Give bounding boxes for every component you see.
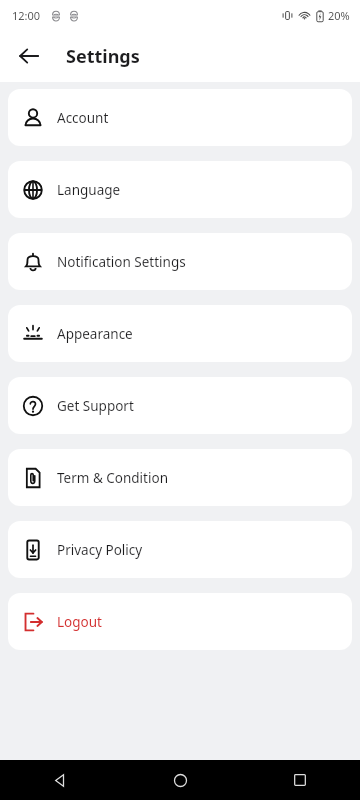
staticText: 20% (328, 8, 350, 23)
staticText: Logout (57, 613, 102, 631)
staticText: 12:00 (12, 8, 41, 23)
staticText: Settings (66, 44, 140, 69)
button[interactable]: Account (8, 89, 352, 146)
button[interactable]: Notification Settings (8, 233, 352, 290)
button[interactable]: Recents (240, 760, 360, 800)
staticText: Appearance (57, 325, 133, 343)
button[interactable]: Privacy Policy (8, 521, 352, 578)
button[interactable]: Term & Condition (8, 449, 352, 506)
button[interactable]: Back (8, 35, 50, 77)
staticText: Notification Settings (57, 253, 186, 271)
button[interactable]: Back (0, 760, 120, 800)
button[interactable]: Get Support (8, 377, 352, 434)
button[interactable]: Appearance (8, 305, 352, 362)
button[interactable]: Language (8, 161, 352, 218)
staticText: Term & Condition (57, 469, 168, 487)
staticText: Privacy Policy (57, 541, 143, 559)
button[interactable]: Home (120, 760, 240, 800)
staticText: Get Support (57, 397, 134, 415)
staticText: Account (57, 109, 109, 127)
button[interactable]: Logout (8, 593, 352, 650)
staticText: Language (57, 181, 121, 199)
